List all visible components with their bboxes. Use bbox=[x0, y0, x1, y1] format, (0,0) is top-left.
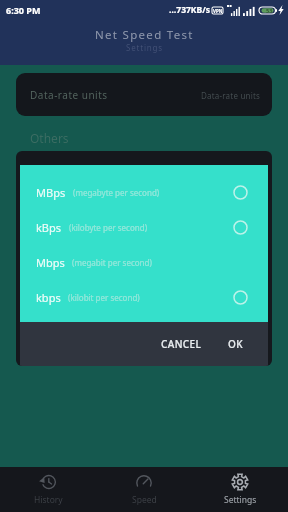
staticText: (kilobit per second) bbox=[68, 292, 140, 303]
staticText: OK bbox=[228, 337, 243, 351]
button[interactable] bbox=[16, 208, 272, 252]
staticText: kBps bbox=[36, 220, 62, 235]
staticText: Others bbox=[30, 130, 69, 146]
button[interactable]: Speed bbox=[96, 467, 192, 512]
button[interactable]: Mbps bbox=[20, 245, 268, 280]
staticText: 53 bbox=[266, 7, 273, 14]
staticText: (megabyte per second) bbox=[73, 187, 160, 198]
button[interactable]: History bbox=[0, 467, 96, 512]
staticText: Data-rate units bbox=[30, 88, 108, 102]
staticText: Net Speed Test bbox=[95, 27, 194, 43]
button[interactable]: kBps bbox=[20, 210, 268, 245]
button[interactable]: CANCEL bbox=[152, 328, 211, 360]
staticText: 6:30 PM bbox=[6, 4, 41, 16]
staticText: MBps bbox=[36, 185, 66, 200]
staticText: Mbps bbox=[36, 255, 65, 270]
button[interactable]: MBps bbox=[20, 175, 268, 210]
staticText: CANCEL bbox=[161, 337, 202, 351]
staticText: kbps bbox=[36, 290, 61, 305]
staticText: Settings bbox=[126, 42, 163, 53]
button[interactable]: kbps bbox=[20, 280, 268, 315]
staticText: VPN bbox=[213, 8, 223, 14]
staticText: Data-rate units bbox=[201, 90, 261, 101]
staticText: Settings bbox=[224, 494, 257, 506]
button[interactable]: Data-rate units bbox=[16, 73, 272, 116]
staticText: …737KB/s bbox=[169, 4, 210, 16]
staticText: (kilobyte per second) bbox=[69, 222, 148, 233]
button[interactable]: Settings bbox=[192, 467, 288, 512]
staticText: History bbox=[34, 494, 63, 506]
staticText: (megabit per second) bbox=[72, 257, 152, 268]
button[interactable]: OK bbox=[219, 328, 252, 360]
staticText: Speed bbox=[132, 494, 157, 506]
